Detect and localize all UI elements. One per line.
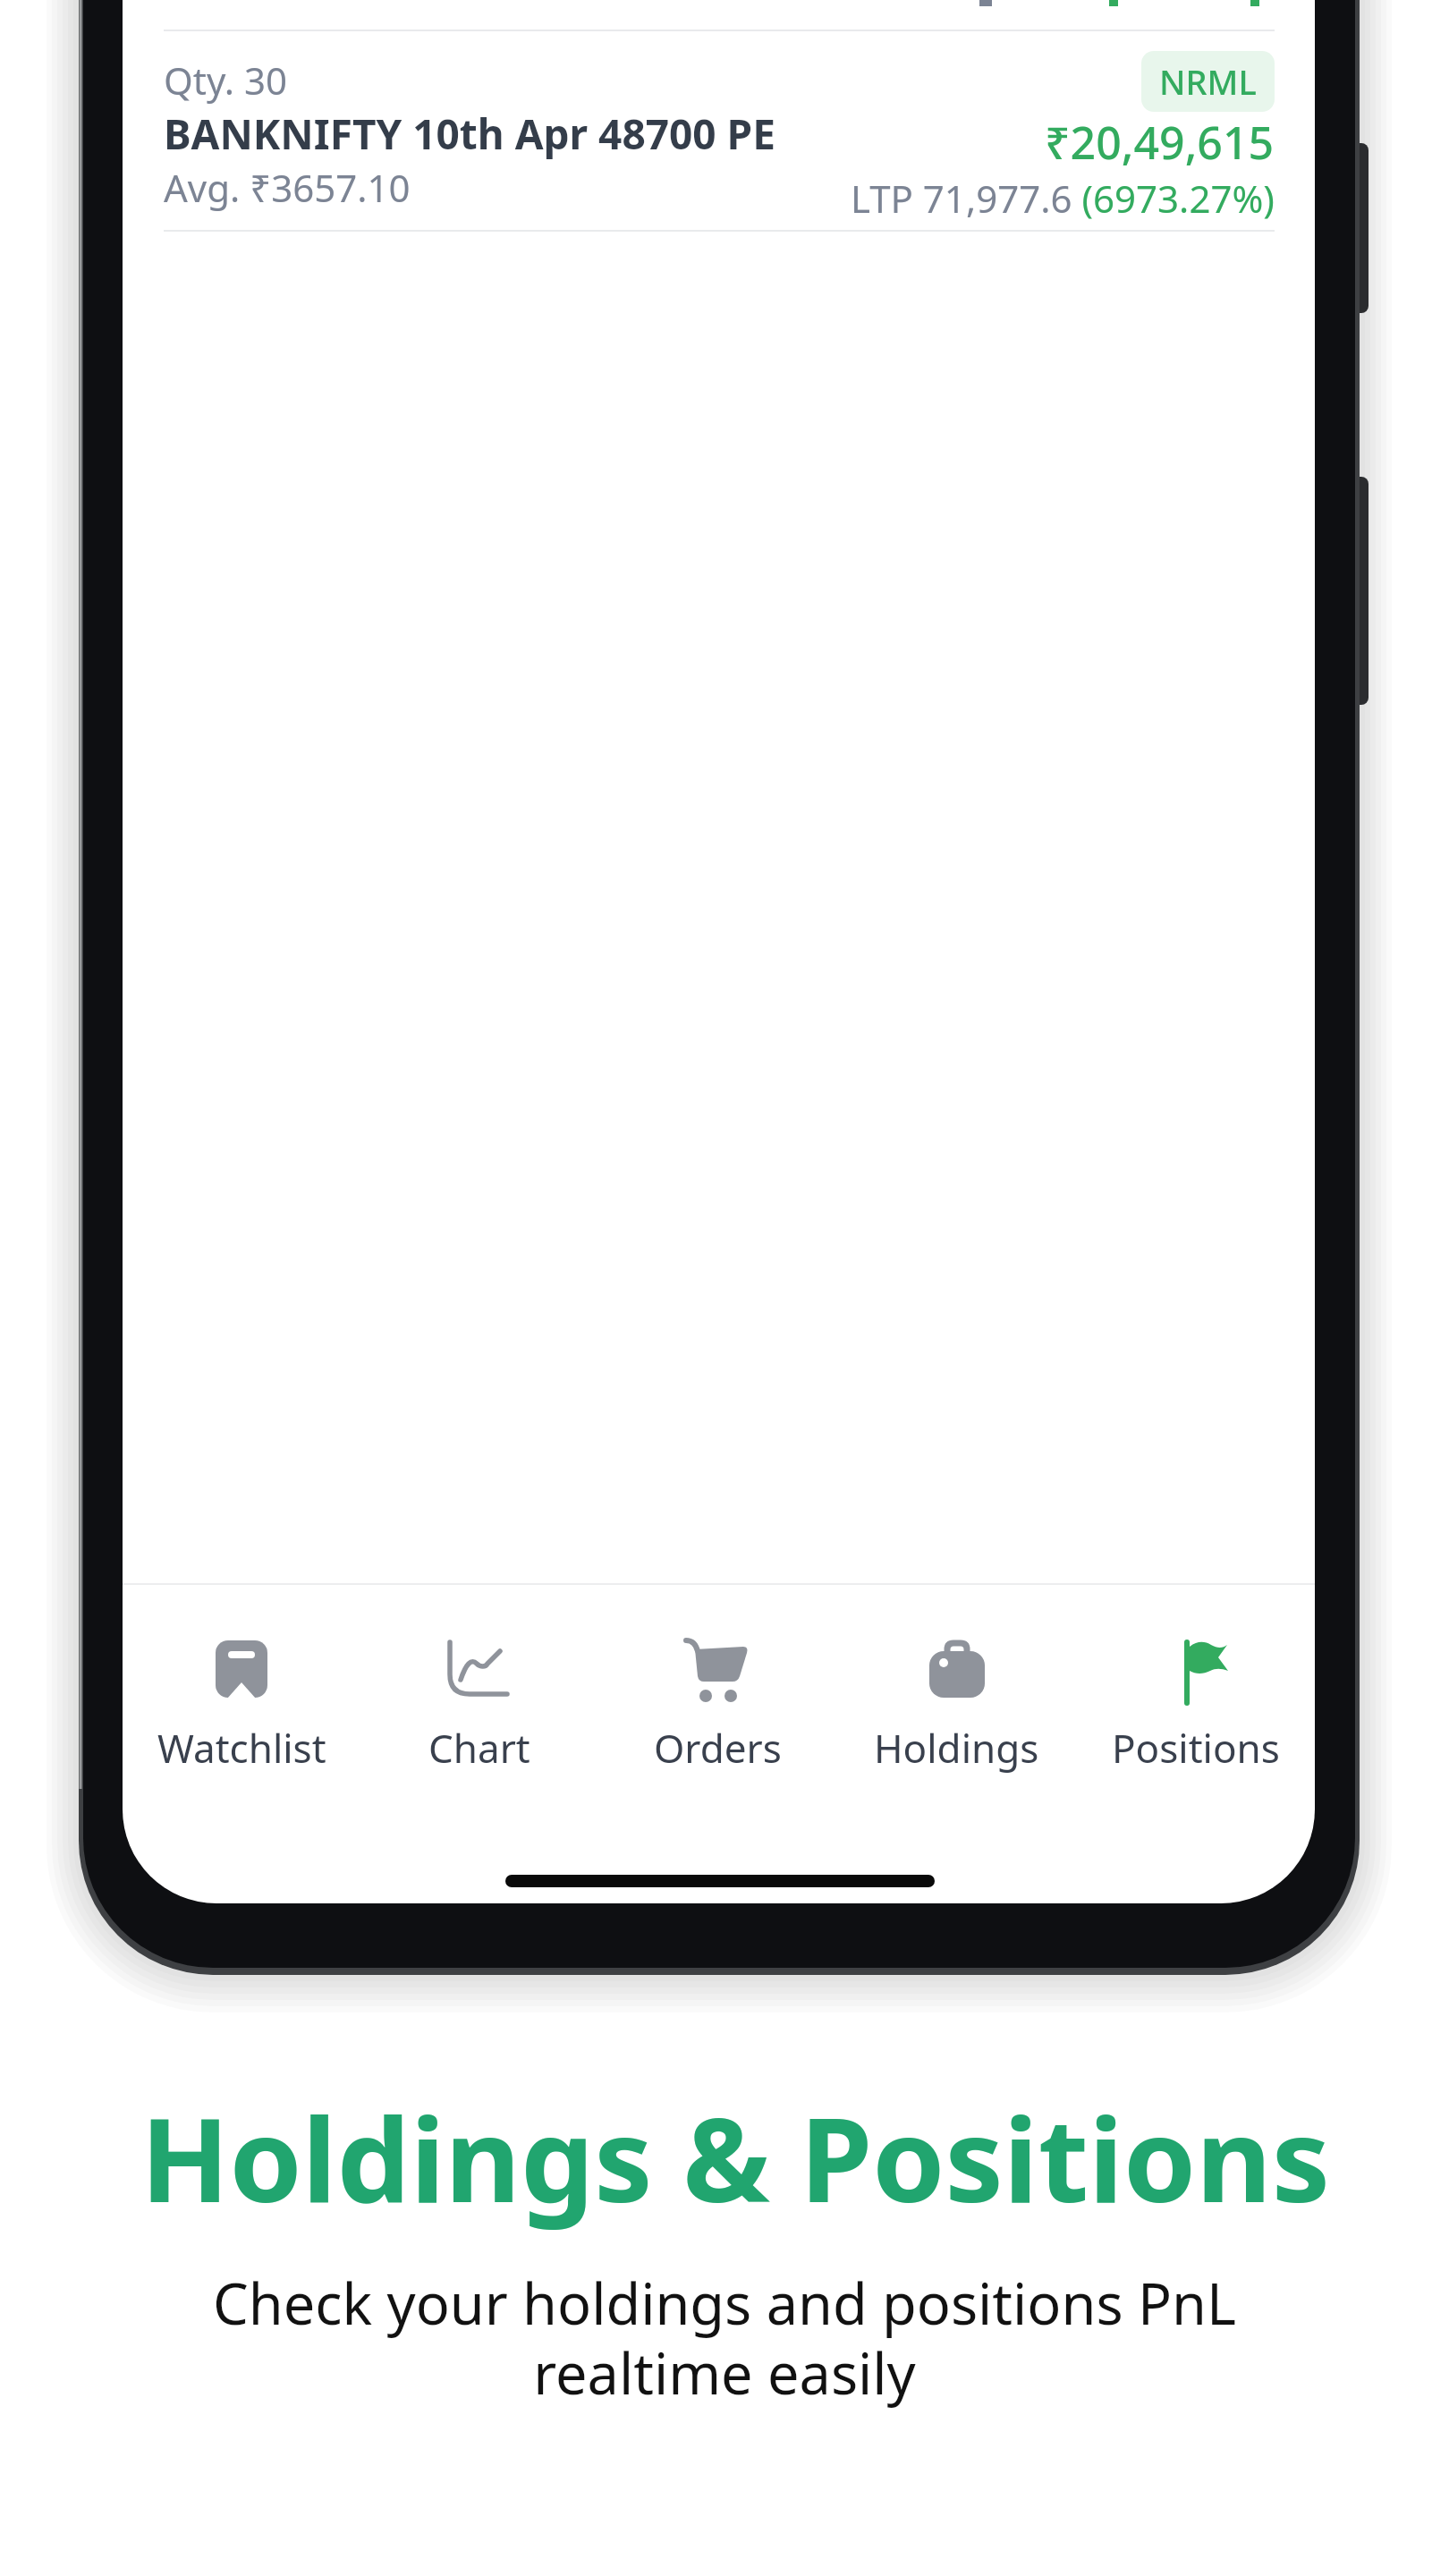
staticText: ₹20,49,615 (1045, 112, 1275, 173)
staticText: Avg. ₹3657.10 (164, 162, 411, 213)
button[interactable]: Positions (1076, 1585, 1315, 1800)
staticText: Holdings & Positions (11, 2078, 1449, 2236)
button[interactable]: Holdings (837, 1585, 1076, 1800)
button[interactable]: Chart (360, 1585, 598, 1800)
staticText: NRML (1159, 58, 1257, 105)
staticText: Watchlist (157, 1721, 326, 1775)
button[interactable]: Orders (598, 1585, 837, 1800)
staticText: Chart (428, 1721, 530, 1775)
staticText: Positions (1112, 1721, 1280, 1775)
staticText: Holdings (874, 1721, 1039, 1775)
staticText: Check your holdings and positions PnL re… (0, 2265, 1449, 2411)
staticText: LTP 71,977.6 (6973.27%) (851, 173, 1275, 224)
staticText: BANKNIFTY 10th Apr 48700 PE (164, 106, 775, 162)
button[interactable]: Qty. 30 (123, 31, 1315, 230)
button[interactable]: Watchlist (123, 1585, 360, 1800)
staticText: Qty. 30 (164, 55, 287, 106)
staticText: Orders (654, 1721, 782, 1775)
